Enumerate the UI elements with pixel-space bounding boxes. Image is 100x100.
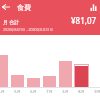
staticText: 6月: [30, 89, 37, 94]
button[interactable]: Chart: [86, 0, 100, 14]
staticText: 3月: [62, 89, 69, 94]
staticText: 月 合計: [3, 19, 20, 26]
staticText: 4月: [0, 89, 5, 94]
staticText: 食費: [17, 3, 31, 12]
staticText: 8月: [78, 89, 85, 94]
staticText: ¥81,07: [71, 15, 97, 26]
staticText: 7月: [46, 89, 53, 94]
staticText: 5月: [14, 89, 21, 94]
button[interactable]: Back: [0, 0, 12, 14]
staticText: 2020年8月1日 - 2020年8月31日: [3, 27, 53, 32]
staticText: 9月: [94, 89, 100, 94]
